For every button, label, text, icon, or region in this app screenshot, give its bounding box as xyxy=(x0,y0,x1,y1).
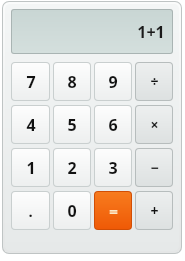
staticText: 6 xyxy=(108,114,118,136)
staticText: . xyxy=(28,201,33,221)
staticText: 0 xyxy=(67,200,77,222)
button[interactable]: . xyxy=(12,192,49,229)
button[interactable]: 0 xyxy=(54,192,90,229)
staticText: 7 xyxy=(26,71,36,93)
staticText: 2 xyxy=(67,157,77,179)
button[interactable]: 4 xyxy=(12,106,49,143)
button[interactable]: 5 xyxy=(54,106,90,143)
staticText: ÷ xyxy=(150,72,159,91)
staticText: 9 xyxy=(108,71,118,93)
button[interactable]: Plus xyxy=(136,192,172,229)
staticText: 1+1 xyxy=(137,21,165,43)
staticText: 3 xyxy=(108,157,118,179)
staticText: 5 xyxy=(67,114,77,136)
button[interactable]: 9 xyxy=(95,63,131,100)
staticText: + xyxy=(150,201,159,220)
button[interactable]: 1 xyxy=(12,149,49,186)
staticText: 4 xyxy=(26,114,36,136)
button[interactable]: 3 xyxy=(95,149,131,186)
staticText: 8 xyxy=(67,71,77,93)
staticText: = xyxy=(109,201,118,221)
button[interactable]: Multiply xyxy=(136,106,172,143)
button[interactable]: 8 xyxy=(54,63,90,100)
button[interactable]: 6 xyxy=(95,106,131,143)
staticText: × xyxy=(150,115,159,134)
button[interactable]: 7 xyxy=(12,63,49,100)
staticText: − xyxy=(150,158,159,177)
button[interactable]: Minus xyxy=(136,149,172,186)
staticText: 1 xyxy=(26,157,36,179)
button[interactable]: Divide xyxy=(136,63,172,100)
button[interactable]: 2 xyxy=(54,149,90,186)
button[interactable]: Equals xyxy=(95,192,131,229)
